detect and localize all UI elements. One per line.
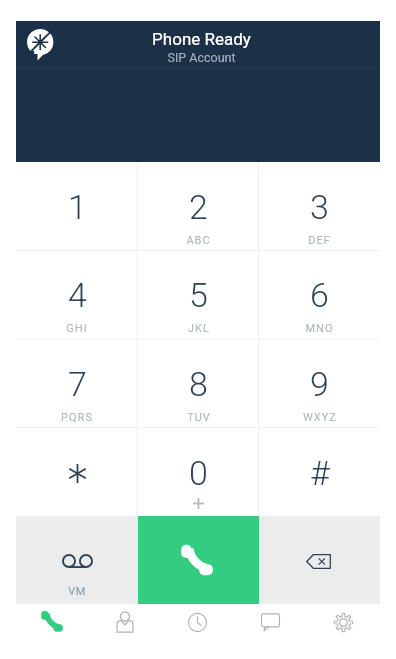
- button[interactable]: 1: [16, 162, 138, 250]
- staticText: 1: [68, 187, 87, 227]
- button[interactable]: 7: [16, 338, 138, 427]
- button[interactable]: 4: [16, 250, 138, 338]
- button[interactable]: Dialer: [16, 604, 88, 640]
- button[interactable]: 8: [138, 338, 259, 427]
- staticText: 5: [189, 275, 208, 315]
- staticText: 8: [189, 364, 208, 404]
- button[interactable]: Account status: [18, 22, 62, 66]
- button[interactable]: 0: [138, 427, 259, 516]
- staticText: TUV: [187, 411, 211, 424]
- button[interactable]: 5: [138, 250, 259, 338]
- staticText: JKL: [188, 322, 210, 335]
- button[interactable]: VM: [16, 516, 138, 604]
- staticText: #: [310, 453, 330, 493]
- staticText: 6: [310, 275, 329, 315]
- staticText: SIP Account: [167, 50, 236, 65]
- staticText: VM: [68, 585, 86, 598]
- button[interactable]: [16, 427, 138, 516]
- button[interactable]: 6: [259, 250, 380, 338]
- staticText: PQRS: [61, 411, 93, 424]
- staticText: 7: [68, 364, 87, 404]
- button[interactable]: Settings: [307, 604, 380, 640]
- button[interactable]: Contacts: [88, 604, 161, 640]
- staticText: 3: [310, 187, 329, 227]
- staticText: ABC: [186, 234, 211, 247]
- staticText: 2: [189, 187, 208, 227]
- staticText: 0: [189, 453, 208, 493]
- staticText: WXYZ: [303, 411, 337, 424]
- button[interactable]: 2: [138, 162, 259, 250]
- staticText: MNO: [305, 322, 334, 335]
- button[interactable]: Recents: [161, 604, 234, 640]
- button[interactable]: Call: [138, 516, 259, 604]
- staticText: 9: [310, 364, 329, 404]
- button[interactable]: 3: [259, 162, 380, 250]
- staticText: GHI: [66, 322, 88, 335]
- button[interactable]: #: [259, 427, 380, 516]
- button[interactable]: 9: [259, 338, 380, 427]
- staticText: Phone Ready: [152, 29, 251, 49]
- staticText: 4: [68, 275, 87, 315]
- button[interactable]: Messages: [234, 604, 307, 640]
- button[interactable]: Backspace: [259, 516, 380, 604]
- staticText: DEF: [308, 234, 331, 247]
